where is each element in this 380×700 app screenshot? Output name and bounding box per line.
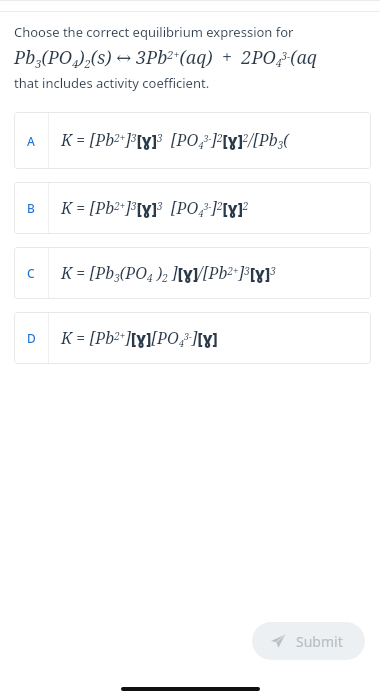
staticText: K = [Pb2+]3[ɣ]3 [PO43−]2[ɣ]2/[Pb3( — [61, 129, 289, 152]
staticText: Pb3(PO4)2(s) ↔ 3Pb2+(aq) + 2PO43−(aq — [14, 45, 317, 71]
staticText: K = [Pb3(PO4 )2 ][ɣ]/[Pb2+]3[ɣ]3 — [61, 262, 276, 285]
staticText: D — [27, 330, 36, 346]
button[interactable]: C — [14, 247, 371, 299]
button[interactable]: D — [14, 312, 371, 364]
button[interactable]: Submit — [252, 622, 365, 660]
button[interactable]: B — [14, 182, 371, 234]
staticText: A — [27, 133, 35, 149]
staticText: Submit — [296, 632, 343, 651]
staticText: that includes activity coefficient. — [14, 74, 210, 92]
staticText: C — [27, 265, 35, 281]
staticText: Choose the correct equilibrium expressio… — [14, 23, 294, 41]
staticText: B — [27, 200, 35, 216]
staticText: K = [Pb2+][ɣ][PO43−][ɣ] — [61, 327, 218, 349]
button[interactable]: A — [14, 112, 371, 169]
staticText: K = [Pb2+]3[ɣ]3 [PO43−]2[ɣ]2 — [61, 197, 249, 219]
